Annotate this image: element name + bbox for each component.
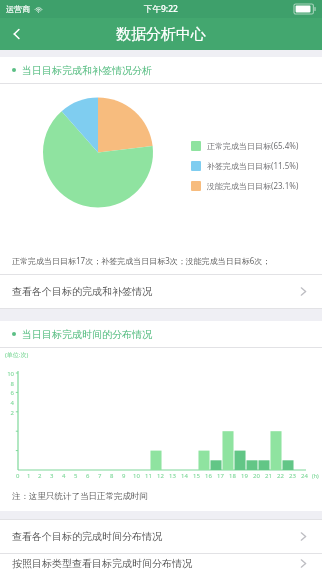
staticText: 补签完成当日目标(11.5%)	[207, 160, 299, 171]
staticText: 0	[16, 472, 20, 480]
staticText: 24	[301, 472, 308, 480]
staticText: 查看各个目标的完成和补签情况	[12, 285, 297, 298]
staticText: (单位:次)	[5, 351, 29, 359]
staticText: 5	[74, 472, 78, 480]
button[interactable]: 按照目标类型查看目标完成时间分布情况	[0, 554, 322, 572]
staticText: 12	[157, 472, 164, 480]
staticText: 10	[0, 370, 14, 378]
staticText: 运营商	[6, 4, 30, 14]
staticText: 11	[145, 472, 152, 480]
button[interactable]: 查看各个目标的完成时间分布情况	[0, 520, 322, 553]
staticText: 正常完成当日目标17次；补签完成当日目标3次；没能完成当日目标6次；	[12, 255, 271, 266]
staticText: 查看各个目标的完成时间分布情况	[12, 530, 297, 543]
staticText: 1	[27, 472, 31, 480]
staticText: 8	[110, 472, 114, 480]
staticText: 14	[181, 472, 188, 480]
staticText: 4	[0, 399, 14, 407]
staticText: 按照目标类型查看目标完成时间分布情况	[12, 557, 297, 570]
staticText: 17	[217, 472, 224, 480]
button[interactable]: Back	[0, 18, 34, 50]
staticText: 22	[277, 472, 284, 480]
staticText: 2	[0, 409, 14, 417]
staticText: 注：这里只统计了当日正常完成时间	[12, 491, 148, 502]
staticText: 15	[193, 472, 200, 480]
staticText: 没能完成当日目标(23.1%)	[207, 180, 299, 191]
staticText: 13	[169, 472, 176, 480]
staticText: 下午9:22	[144, 3, 178, 15]
staticText: 2	[38, 472, 42, 480]
staticText: 23	[289, 472, 296, 480]
staticText: 7	[98, 472, 102, 480]
staticText: 9	[122, 472, 126, 480]
staticText: 正常完成当日目标(65.4%)	[207, 140, 299, 151]
staticText: 16	[205, 472, 212, 480]
staticText: 19	[241, 472, 248, 480]
staticText: 6	[0, 389, 14, 397]
staticText: 3	[50, 472, 54, 480]
staticText: 数据分析中心	[116, 25, 206, 44]
staticText: 18	[229, 472, 236, 480]
staticText: 10	[133, 472, 140, 480]
staticText: 20	[253, 472, 260, 480]
staticText: 8	[0, 380, 14, 388]
staticText: 当日目标完成和补签情况分析	[22, 64, 152, 77]
staticText: 4	[62, 472, 66, 480]
staticText: 当日目标完成时间的分布情况	[22, 328, 152, 341]
staticText: 21	[265, 472, 272, 480]
button[interactable]: 查看各个目标的完成和补签情况	[0, 275, 322, 308]
staticText: (h)	[312, 472, 319, 479]
staticText: 6	[86, 472, 90, 480]
